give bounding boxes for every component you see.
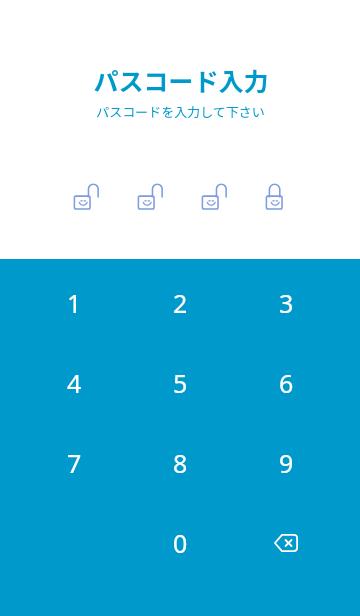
button[interactable]: Delete <box>233 503 339 583</box>
staticText: 9 <box>279 446 294 480</box>
staticText: 5 <box>173 366 188 400</box>
button[interactable]: 2 <box>127 263 233 343</box>
button[interactable]: 5 <box>127 343 233 423</box>
staticText: 1 <box>67 286 82 320</box>
staticText: 0 <box>173 526 188 560</box>
button[interactable]: 6 <box>233 343 339 423</box>
staticText: 7 <box>67 446 82 480</box>
button[interactable]: 9 <box>233 423 339 503</box>
button[interactable]: 4 <box>21 343 127 423</box>
staticText: 2 <box>173 286 188 320</box>
button[interactable]: 0 <box>127 503 233 583</box>
button[interactable]: 3 <box>233 263 339 343</box>
staticText: 6 <box>279 366 294 400</box>
staticText: 8 <box>173 446 188 480</box>
button[interactable]: 8 <box>127 423 233 503</box>
staticText: パスコード入力 <box>93 62 269 98</box>
staticText: パスコードを入力して下さい <box>96 102 265 121</box>
button[interactable]: 1 <box>21 263 127 343</box>
button[interactable]: 7 <box>21 423 127 503</box>
staticText: 4 <box>67 366 82 400</box>
staticText: 3 <box>279 286 294 320</box>
